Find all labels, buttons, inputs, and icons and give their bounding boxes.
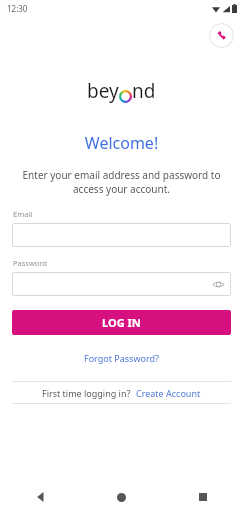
- button[interactable]: Home: [81, 482, 162, 512]
- button[interactable]: Back: [0, 482, 81, 512]
- button[interactable]: [12, 223, 231, 247]
- staticText: First time logging in?: [42, 387, 131, 399]
- staticText: Email: [13, 209, 33, 219]
- button[interactable]: Recents: [162, 482, 243, 512]
- button[interactable]: LOG IN: [12, 310, 231, 335]
- staticText: LOG IN: [102, 315, 141, 330]
- staticText: Welcome!: [0, 132, 243, 154]
- button[interactable]: Forgot Password?: [80, 348, 163, 368]
- button[interactable]: Create Account: [136, 387, 201, 399]
- staticText: bey: [87, 78, 119, 104]
- staticText: Password: [13, 258, 47, 268]
- button[interactable]: Show password: [210, 276, 226, 292]
- button[interactable]: Call support: [209, 23, 234, 48]
- staticText: Enter your email address and password to…: [13, 168, 230, 196]
- staticText: nd: [132, 78, 156, 104]
- staticText: 12:30: [7, 3, 28, 14]
- button[interactable]: Show password: [12, 272, 231, 296]
